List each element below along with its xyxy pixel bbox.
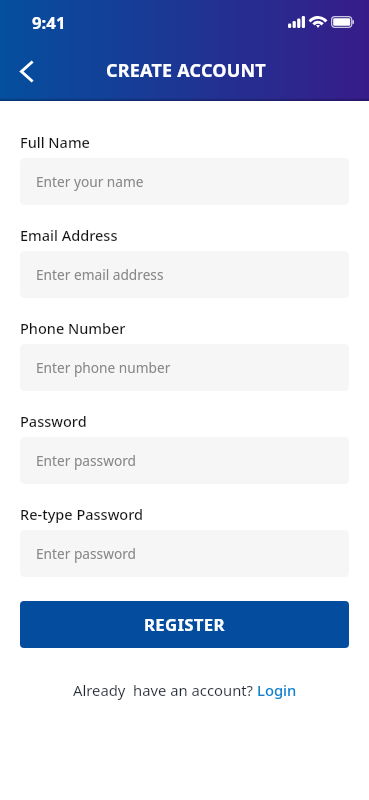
staticText: Phone Number (20, 318, 126, 338)
button[interactable]: Enter phone number (20, 344, 349, 391)
button[interactable]: REGISTER (20, 601, 349, 648)
button[interactable]: Enter password (20, 530, 349, 577)
staticText: Enter phone number (36, 358, 171, 377)
staticText: REGISTER (144, 613, 225, 636)
staticText: Enter password (36, 544, 136, 563)
staticText: Enter your name (36, 172, 144, 191)
staticText: CREATE ACCOUNT (106, 58, 266, 83)
staticText: 9:41 (32, 11, 66, 34)
staticText: Login (257, 680, 297, 700)
button[interactable]: Enter your name (20, 158, 349, 205)
button[interactable]: Enter password (20, 437, 349, 484)
staticText: Full Name (20, 132, 90, 152)
staticText: Enter password (36, 451, 136, 470)
button[interactable]: Enter email address (20, 251, 349, 298)
staticText: Password (20, 411, 87, 431)
staticText: Email Address (20, 225, 118, 245)
button[interactable]: Back (4, 49, 48, 93)
staticText: Already have an account? (73, 680, 257, 700)
staticText: Enter email address (36, 265, 164, 284)
staticText: Re-type Password (20, 504, 144, 524)
button[interactable]: Login (257, 676, 297, 704)
